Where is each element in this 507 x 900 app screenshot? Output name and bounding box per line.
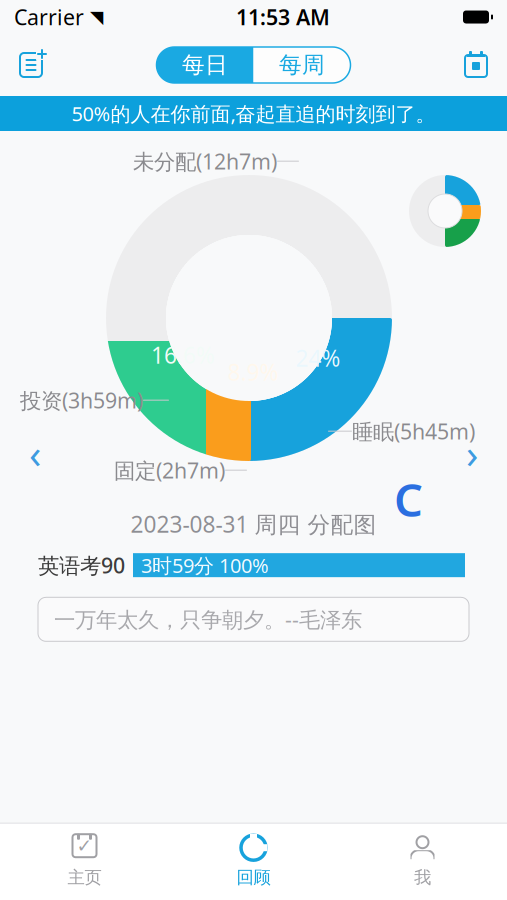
staticText: 16.6% — [151, 340, 215, 370]
button[interactable]: Calendar — [453, 43, 507, 87]
staticText: C — [394, 469, 423, 529]
staticText: ✓ — [76, 835, 92, 856]
staticText: 主页 — [67, 867, 101, 888]
staticText: 睡眠(5h45m) — [352, 417, 475, 445]
staticText: 回顾 — [236, 867, 270, 888]
staticText: 投资(3h59m) — [20, 386, 143, 414]
staticText: 英语考90 — [38, 551, 125, 579]
button[interactable]: ✓ — [0, 824, 169, 900]
staticText: 一万年太久，只争朝夕。--毛泽东 — [54, 605, 362, 633]
button[interactable]: Next day — [447, 436, 507, 470]
staticText: 2023-08-31 周四 分配图 — [130, 509, 376, 539]
staticText: 11:53 AM — [236, 3, 330, 31]
staticText: 8.9% — [227, 357, 278, 387]
staticText: Carrier — [14, 3, 84, 31]
staticText: 固定(2h7m) — [114, 456, 225, 484]
staticText: 50%的人在你前面,奋起直追的时刻到了。 — [71, 100, 435, 127]
button[interactable]: 每日 — [156, 47, 253, 83]
button[interactable]: 每周 — [253, 47, 350, 83]
staticText: 24% — [295, 343, 340, 373]
button[interactable]: 回顾 — [169, 824, 338, 900]
staticText: › — [466, 426, 478, 479]
button[interactable]: New entry — [0, 43, 54, 87]
staticText: 我 — [414, 867, 431, 888]
staticText: ◥ — [90, 7, 103, 27]
staticText: ‹ — [29, 426, 41, 479]
staticText: 每周 — [279, 51, 325, 79]
button[interactable]: 我 — [338, 824, 507, 900]
staticText: 每日 — [182, 51, 228, 79]
staticText: 未分配(12h7m) — [133, 147, 277, 175]
button[interactable]: Previous day — [0, 436, 60, 470]
staticText: 3时59分 100% — [141, 552, 269, 578]
